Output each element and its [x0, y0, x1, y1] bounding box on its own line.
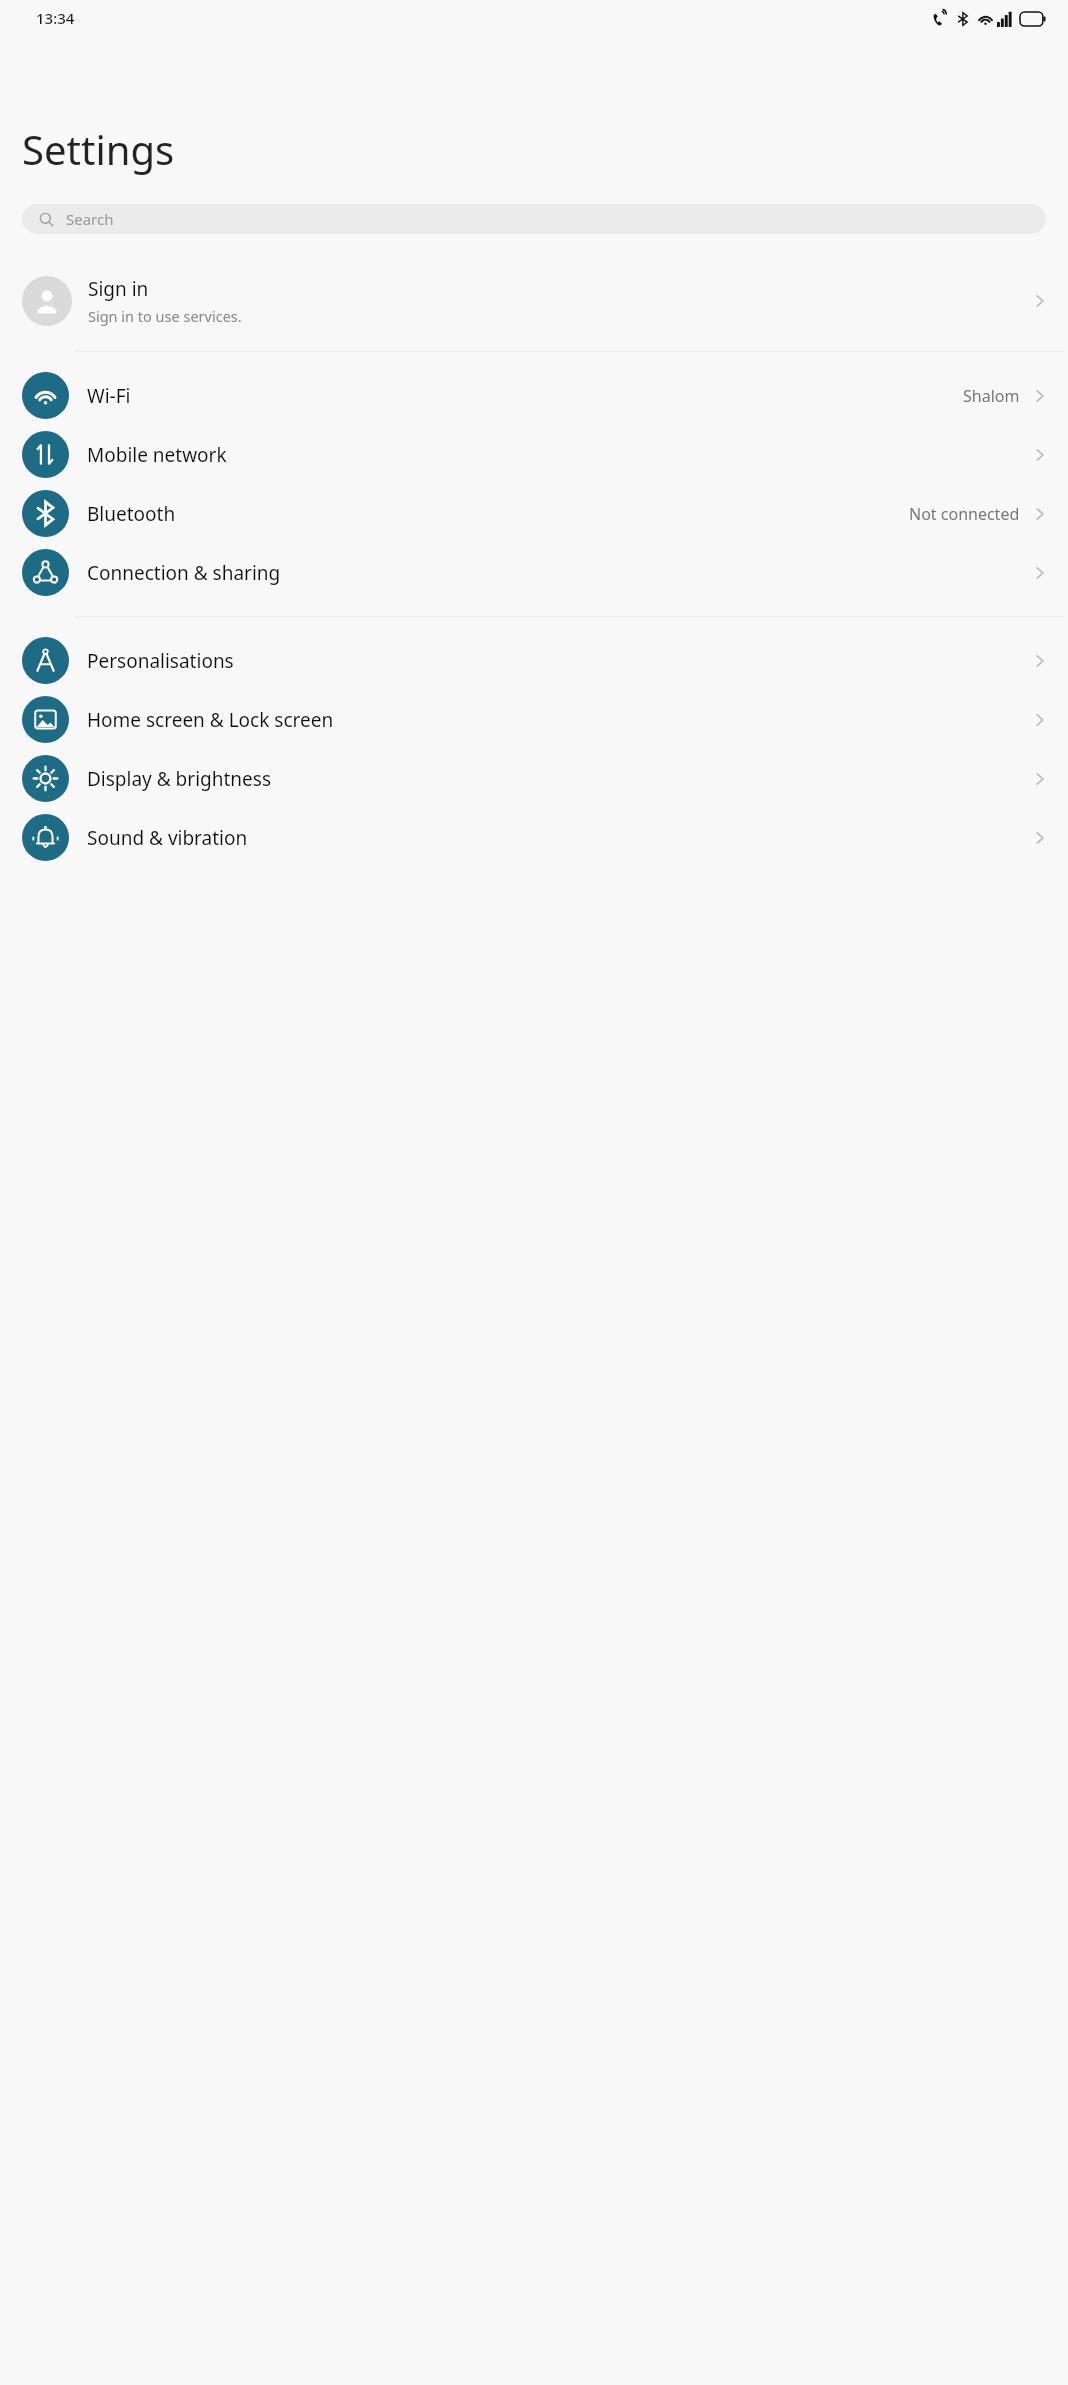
button[interactable]: Home screen & Lock screen [0, 690, 1068, 749]
staticText: Wi-Fi [87, 383, 963, 409]
button[interactable]: Display & brightness [0, 749, 1068, 808]
staticText: Settings [22, 122, 175, 176]
staticText: 13:34 [36, 8, 75, 28]
staticText: Shalom [963, 385, 1020, 407]
staticText: Search [66, 209, 114, 229]
staticText: Sign in [88, 276, 149, 302]
staticText: Display & brightness [87, 766, 1030, 792]
button[interactable]: Bluetooth [0, 484, 1068, 543]
staticText: Personalisations [87, 648, 1030, 674]
staticText: Not connected [909, 503, 1020, 525]
staticText: Connection & sharing [87, 560, 1030, 586]
staticText: Home screen & Lock screen [87, 707, 1030, 733]
button[interactable]: Sound & vibration [0, 808, 1068, 867]
staticText: Sign in to use services. [88, 306, 242, 326]
button[interactable]: Mobile network [0, 425, 1068, 484]
staticText: Mobile network [87, 442, 1030, 468]
staticText: Bluetooth [87, 501, 909, 527]
button[interactable]: Personalisations [0, 631, 1068, 690]
button[interactable]: Sign in [0, 262, 1068, 340]
staticText: Sound & vibration [87, 825, 1030, 851]
button[interactable]: Search [22, 204, 1046, 234]
button[interactable]: Wi-Fi [0, 366, 1068, 425]
button[interactable]: Connection & sharing [0, 543, 1068, 602]
